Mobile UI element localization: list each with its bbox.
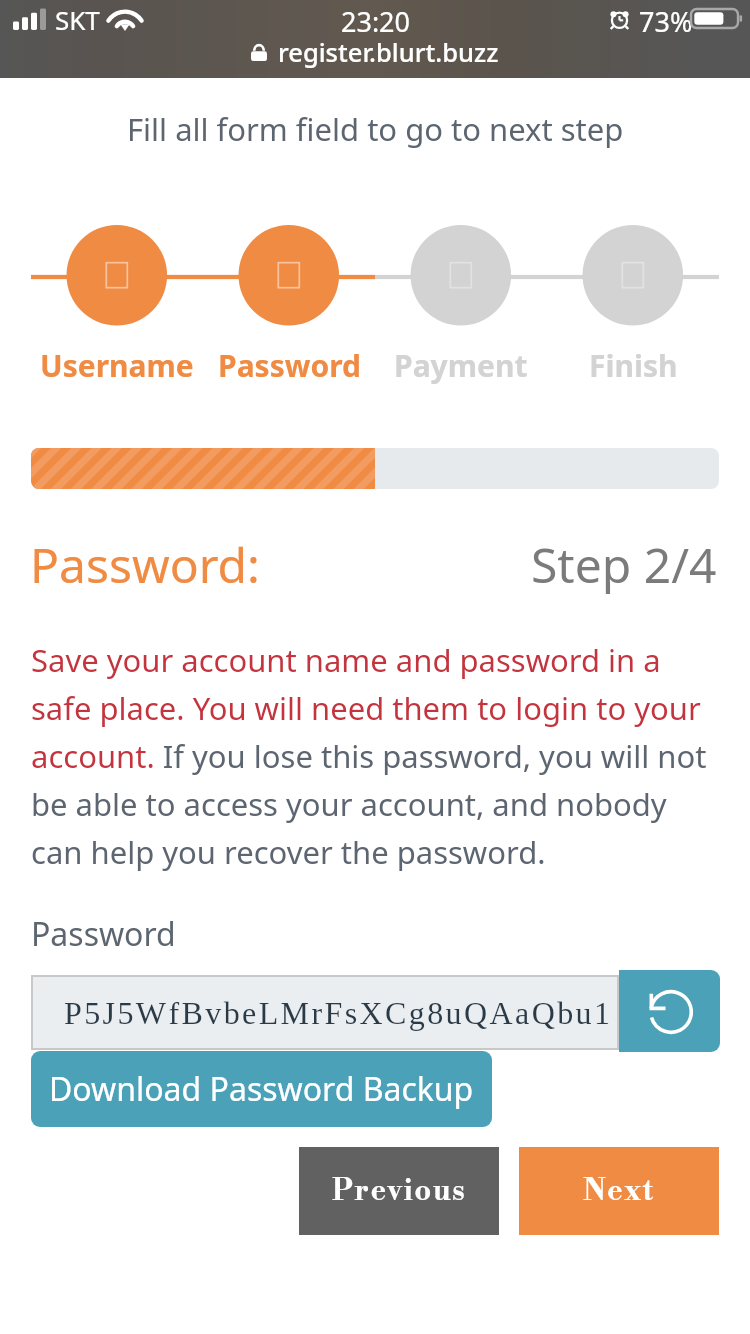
staticText: Finish: [589, 345, 678, 386]
button[interactable]: Regenerate password: [619, 970, 720, 1052]
staticText: 23:20: [341, 3, 411, 40]
staticText: Password: [218, 345, 361, 386]
staticText: P5J5WfBvbeLMrFsXCg8uQAaQbu1: [64, 995, 613, 1030]
button[interactable]: Password: [169, 345, 409, 386]
staticText: Save your account name and password in a…: [31, 639, 721, 873]
staticText: Password:: [30, 532, 260, 597]
button[interactable]: Username: [0, 345, 237, 386]
staticText: Download Password Backup: [49, 1067, 474, 1111]
staticText: register.blurt.buzz: [278, 35, 499, 70]
button[interactable]: Previous: [299, 1147, 499, 1235]
staticText: Payment: [394, 345, 528, 386]
button[interactable]: Download Password Backup: [31, 1051, 492, 1127]
staticText: Step 2/4: [531, 532, 717, 597]
staticText: 73%: [639, 3, 693, 40]
staticText: Previous: [332, 1173, 467, 1209]
button[interactable]: Finish: [513, 345, 750, 386]
staticText: Username: [40, 345, 194, 386]
button[interactable]: Next: [519, 1147, 719, 1235]
staticText: SKT: [55, 2, 100, 37]
staticText: Next: [583, 1173, 655, 1209]
button[interactable]: Payment: [341, 345, 581, 386]
staticText: Password: [31, 912, 176, 956]
staticText: Fill all form field to go to next step: [127, 108, 624, 150]
